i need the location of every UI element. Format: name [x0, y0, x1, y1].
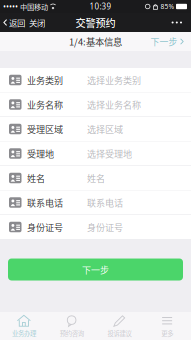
button[interactable]: 受理区域	[0, 117, 191, 141]
staticText: 业务办理	[12, 329, 36, 338]
staticText: 交警预约	[75, 15, 115, 30]
button[interactable]: 投诉建议	[95, 314, 143, 338]
staticText: 中国移动	[20, 1, 48, 12]
staticText: 更多	[161, 329, 173, 338]
button[interactable]: 联系电话	[0, 190, 191, 215]
button[interactable]: 身份证号	[0, 215, 191, 239]
staticText: 1/4:基本信息	[69, 35, 122, 48]
staticText: 选择受理地	[87, 147, 132, 160]
button[interactable]: 业务办理	[0, 314, 48, 338]
staticText: 投诉建议	[107, 329, 131, 338]
staticText: 受理地	[27, 147, 54, 160]
staticText: 姓名	[87, 171, 105, 184]
staticText: 下一步	[150, 35, 177, 48]
staticText: 10:39	[89, 1, 111, 12]
button[interactable]: 业务类别	[0, 68, 191, 92]
button[interactable]: 受理地	[0, 141, 191, 166]
staticText: 身份证号	[87, 220, 123, 233]
staticText: 联系电话	[27, 196, 63, 209]
staticText: 选择业务名称	[87, 98, 141, 111]
staticText: 选择业务类别	[87, 73, 141, 86]
button[interactable]: 业务名称	[0, 92, 191, 117]
staticText: 联系电话	[87, 196, 123, 209]
staticText: 预约咨询	[60, 329, 84, 338]
button[interactable]: More	[172, 21, 191, 23]
staticText: 业务类别	[27, 73, 63, 86]
button[interactable]: 下一步	[8, 258, 183, 280]
staticText: 业务名称	[27, 98, 63, 111]
staticText: 身份证号	[27, 220, 63, 233]
button[interactable]: 下一步	[150, 35, 191, 48]
staticText: 85%	[160, 2, 174, 11]
button[interactable]: 返回	[0, 16, 25, 29]
staticText: 姓名	[27, 171, 45, 184]
staticText: 返回	[9, 16, 25, 29]
staticText: 下一步	[82, 263, 109, 276]
staticText: 选择区域	[87, 122, 123, 135]
staticText: •••••	[3, 1, 18, 12]
button[interactable]: 预约咨询	[48, 314, 96, 338]
staticText: 受理区域	[27, 122, 63, 135]
staticText: 关闭	[29, 16, 45, 29]
button[interactable]: 关闭	[25, 16, 45, 29]
button[interactable]: 姓名	[0, 166, 191, 190]
button[interactable]: 更多	[143, 314, 191, 338]
